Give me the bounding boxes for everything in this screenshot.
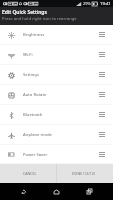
button[interactable]: Auto Rotate <box>0 85 113 105</box>
staticText: Brightness <box>23 32 45 38</box>
staticText: DONE (12/12) <box>72 171 95 176</box>
staticText: 19:41 <box>100 1 111 7</box>
button[interactable]: Brightness <box>0 25 113 45</box>
button[interactable]: DONE (12/12) <box>57 164 113 183</box>
button[interactable]: Settings <box>0 65 113 85</box>
staticText: Edit Quick Settings <box>2 9 47 16</box>
button[interactable]: Power Saver <box>0 145 113 164</box>
button[interactable]: Wi-Fi <box>0 45 113 65</box>
staticText: Press and hold right icon to rearrange <box>2 16 77 22</box>
staticText: Bluetooth <box>23 112 43 118</box>
button[interactable]: Recents <box>81 183 97 200</box>
button[interactable]: CANCEL <box>0 164 56 183</box>
staticText: 29% <box>83 1 91 6</box>
staticText: Settings <box>23 72 39 78</box>
staticText: Power Saver <box>23 152 48 158</box>
staticText: Wi-Fi <box>23 52 33 58</box>
staticText: Airplane mode <box>23 132 52 138</box>
staticText: CANCEL <box>23 171 37 176</box>
button[interactable]: Airplane mode <box>0 125 113 145</box>
button[interactable]: Home <box>48 183 64 200</box>
button[interactable]: Back <box>15 183 31 200</box>
button[interactable]: Bluetooth <box>0 105 113 125</box>
staticText: Auto Rotate <box>23 92 47 98</box>
